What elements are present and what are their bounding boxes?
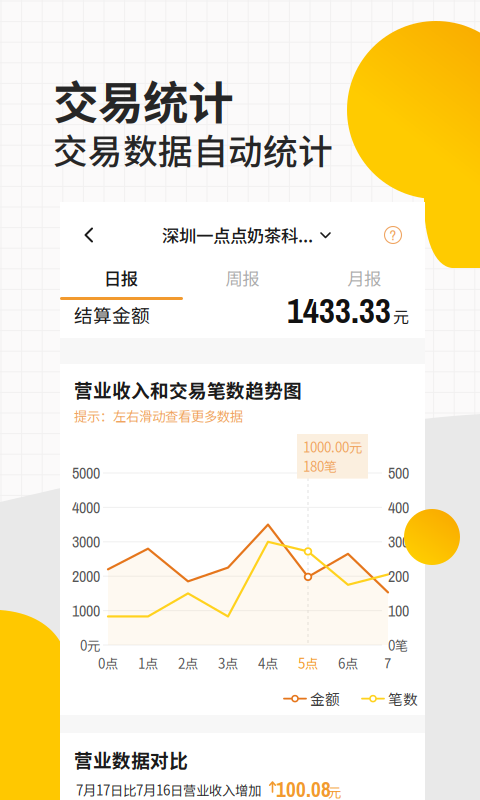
staticText: 4点 — [258, 653, 278, 673]
staticText: 6点 — [338, 653, 358, 673]
staticText: 周报 — [225, 265, 259, 291]
staticText: 元 — [393, 304, 409, 327]
staticText: 营业收入和交易笔数趋势图 — [74, 376, 302, 403]
button[interactable]: 帮助 — [376, 216, 410, 254]
staticText: 金额 — [310, 688, 340, 709]
staticText: 笔数 — [388, 688, 418, 709]
staticText: 5000 — [72, 462, 100, 484]
staticText: 0点 — [98, 653, 118, 673]
staticText: 1点 — [138, 653, 158, 673]
button[interactable]: 周报 — [182, 264, 303, 292]
staticText: 0笔 — [388, 635, 408, 655]
staticText: 180笔 — [303, 456, 337, 476]
staticText: 1433.33 — [287, 287, 391, 334]
staticText: 营业数据对比 — [74, 746, 188, 773]
staticText: 元 — [328, 782, 341, 800]
staticText: 0元 — [80, 635, 100, 655]
button[interactable]: 日报 — [60, 264, 182, 292]
staticText: 500 — [388, 462, 409, 484]
staticText: 交易统计 — [53, 67, 233, 133]
staticText: 2点 — [178, 653, 198, 673]
staticText: 提示：左右滑动查看更多数据 — [74, 406, 243, 425]
staticText: 200 — [388, 565, 409, 587]
staticText: 7月17日比7月16日营业收入增加 — [76, 780, 261, 799]
staticText: 1000.00元 — [303, 437, 362, 456]
staticText: 2000 — [72, 565, 100, 587]
staticText: 交易数据自动统计 — [53, 124, 333, 174]
staticText: 3000 — [72, 531, 100, 553]
staticText: 结算金额 — [74, 301, 150, 328]
staticText: 3点 — [218, 653, 238, 673]
staticText: 7 — [384, 653, 391, 673]
staticText: 100 — [388, 600, 409, 621]
staticText: 400 — [388, 497, 409, 518]
staticText: ? — [389, 225, 396, 245]
staticText: 月报 — [347, 265, 381, 291]
staticText: 日报 — [104, 265, 138, 291]
staticText: 100.08 — [276, 775, 331, 800]
staticText: 4000 — [72, 497, 100, 518]
staticText: 1000 — [72, 600, 100, 621]
button[interactable]: 返回 — [72, 216, 106, 254]
staticText: 5点 — [298, 653, 318, 673]
button[interactable]: 深圳一点点奶茶科... — [162, 216, 331, 254]
staticText: 300 — [388, 531, 409, 553]
button[interactable]: 月报 — [303, 264, 425, 292]
staticText: 深圳一点点奶茶科... — [162, 222, 313, 248]
